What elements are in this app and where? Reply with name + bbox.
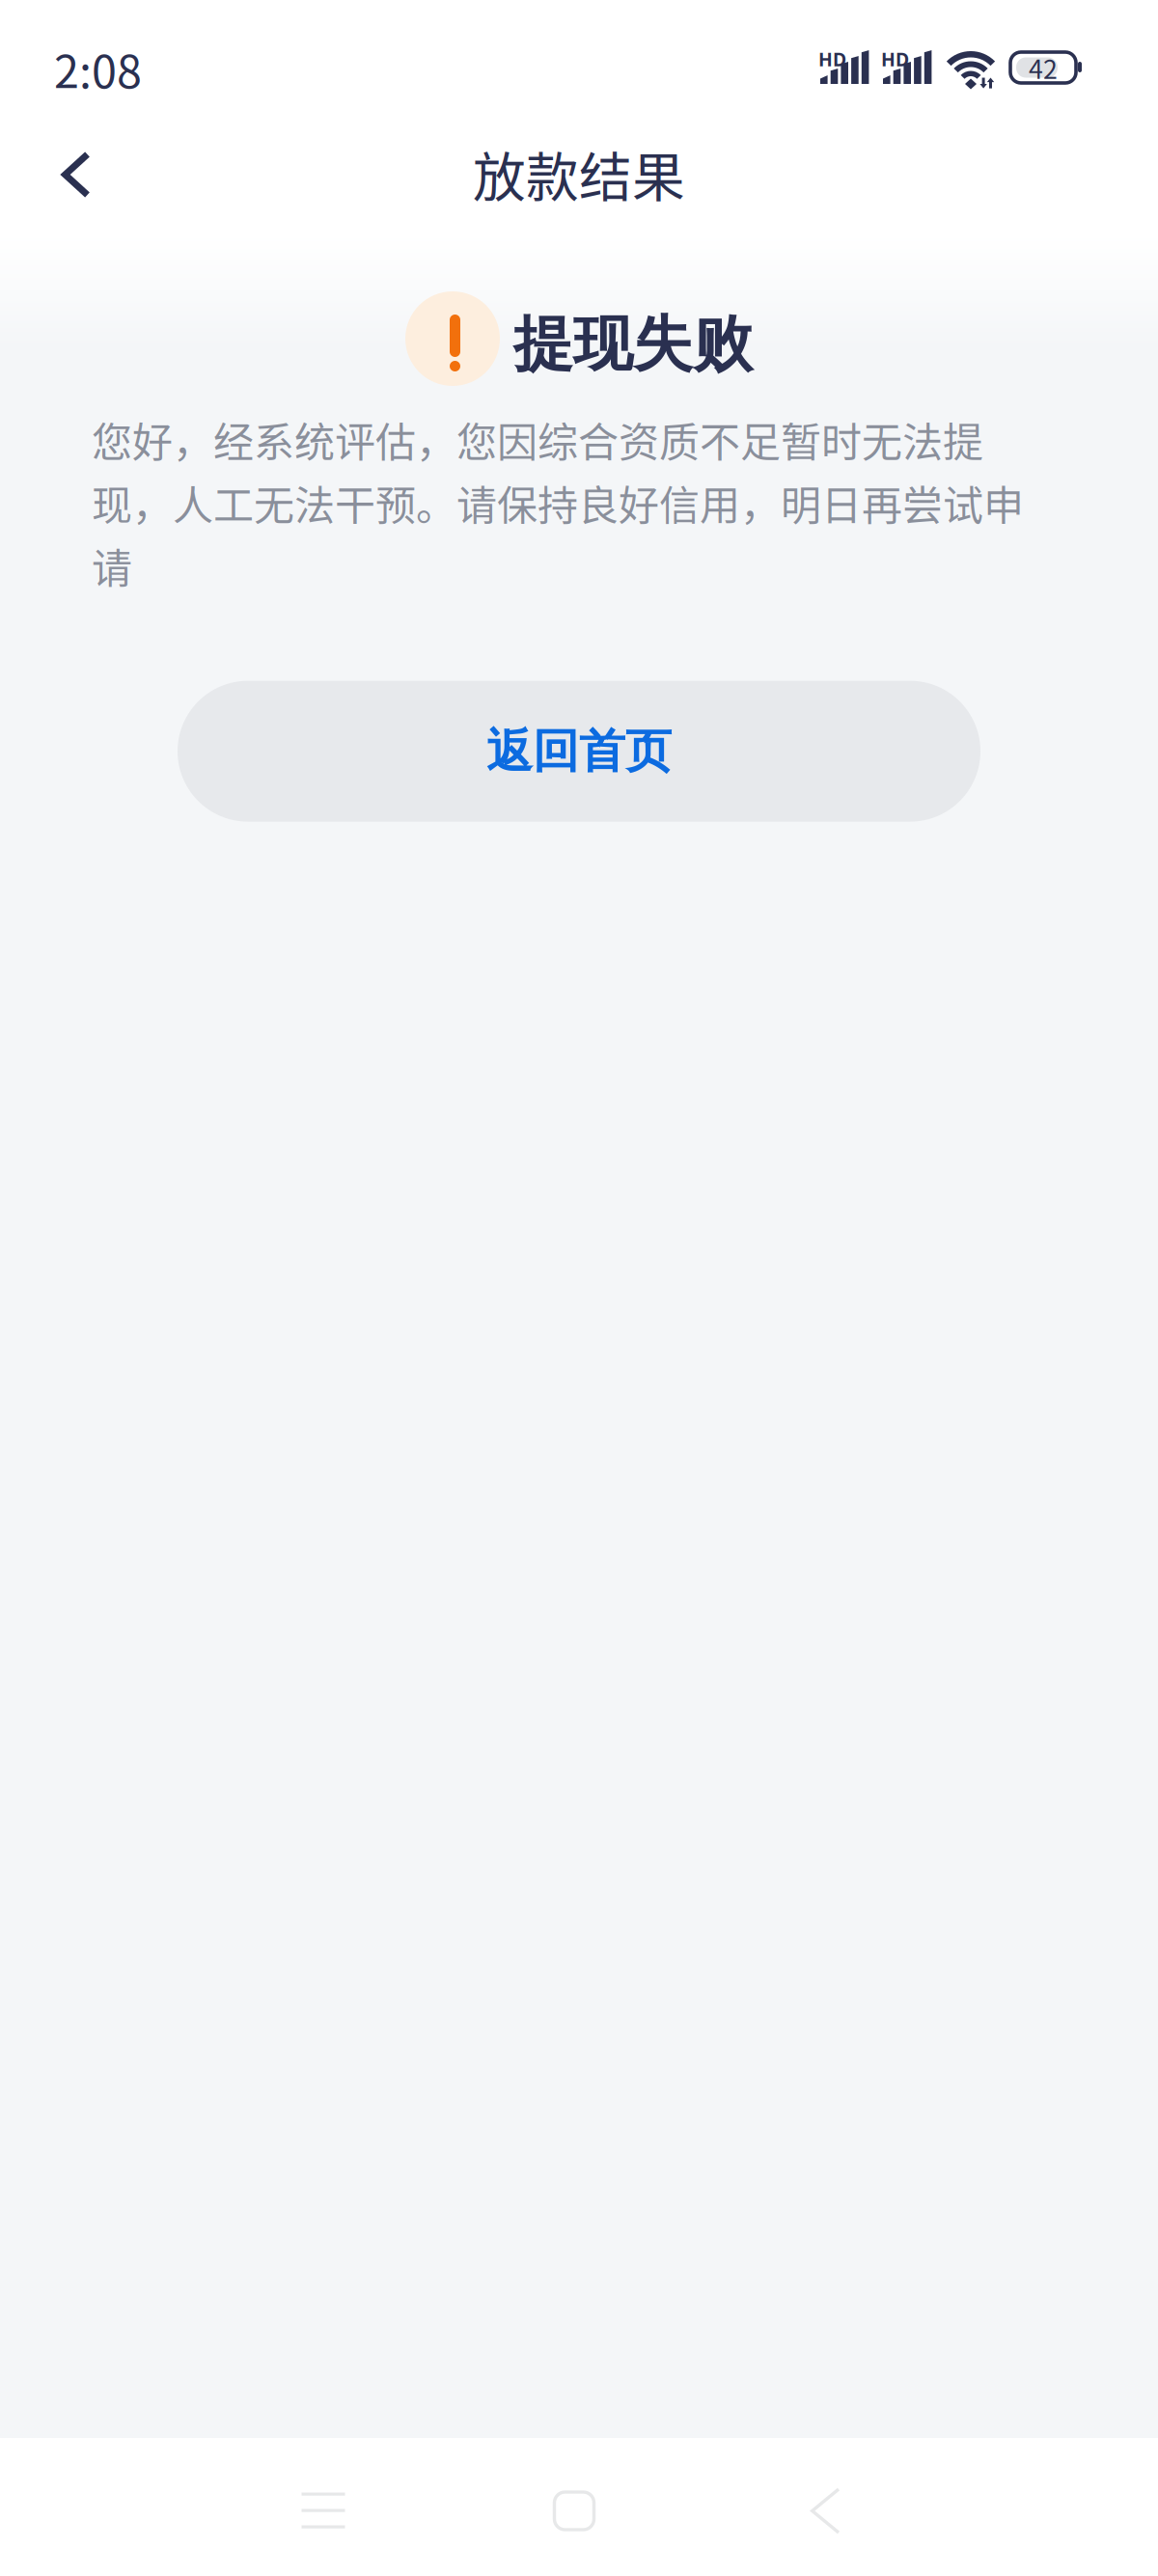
staticText: 2:08 <box>54 36 142 101</box>
staticText: 放款结果 <box>473 135 685 211</box>
staticText: HD <box>881 46 909 72</box>
staticText: 现，人工无法干预。请保持良好信用，明日再尝试申 <box>92 473 1024 532</box>
staticText: HD <box>818 46 846 72</box>
button[interactable]: 返回首页 <box>178 681 980 822</box>
button[interactable]: Home <box>492 2442 656 2576</box>
button[interactable]: Back <box>30 128 123 221</box>
staticText: 您好，经系统评估，您因综合资质不足暂时无法提 <box>92 410 983 469</box>
staticText: 返回首页 <box>486 722 672 780</box>
staticText: 42 <box>1029 49 1058 86</box>
staticText: 请 <box>92 536 132 595</box>
staticText: 提现失败 <box>513 307 753 382</box>
